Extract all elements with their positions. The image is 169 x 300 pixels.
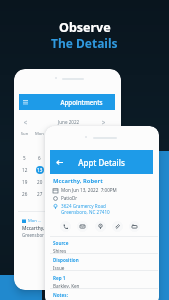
button[interactable]: 9 xyxy=(76,152,90,164)
staticText: 29 xyxy=(66,191,72,197)
staticText: Rep 1 xyxy=(53,275,66,281)
staticText: Mon xyxy=(32,131,47,137)
button[interactable]: 21 xyxy=(47,176,62,188)
button[interactable]: Directions xyxy=(95,221,106,232)
staticText: Thu xyxy=(76,131,90,137)
staticText: 3624 Gramercy Road xyxy=(61,203,106,209)
button[interactable]: 15 xyxy=(62,164,76,176)
staticText: 23 xyxy=(80,179,86,185)
button[interactable]: 7 xyxy=(47,152,62,164)
button[interactable]: Back xyxy=(50,150,153,174)
staticText: Greensboro, NC 27410 xyxy=(61,209,110,215)
staticText: The Details xyxy=(51,35,118,51)
button[interactable]: 29 xyxy=(62,188,76,200)
button[interactable]: 2 xyxy=(104,188,118,200)
button[interactable]: 20 xyxy=(32,176,47,188)
button[interactable]: 5 xyxy=(17,152,32,164)
staticText: Source xyxy=(53,240,69,246)
staticText: 10 xyxy=(94,155,100,161)
staticText: 13 xyxy=(37,167,43,173)
staticText: June 2022 xyxy=(58,119,80,125)
staticText: 19 xyxy=(22,179,28,185)
button[interactable]: 27 xyxy=(32,188,47,200)
button[interactable]: Previous month xyxy=(24,121,27,124)
button[interactable]: 11 xyxy=(104,152,118,164)
button[interactable]: 18 xyxy=(104,164,118,176)
staticText: Observe xyxy=(59,19,111,36)
button[interactable]: 13 xyxy=(32,164,47,176)
staticText: 16 xyxy=(80,167,86,173)
button[interactable]: 28 xyxy=(47,188,62,200)
staticText: Mon Jun 13, 2022 7:00PM xyxy=(61,187,117,193)
staticText: 2 xyxy=(110,191,113,197)
staticText: Disposition xyxy=(53,257,79,263)
button[interactable]: 17 xyxy=(90,164,104,176)
button[interactable]: 26 xyxy=(17,188,32,200)
button[interactable]: 23 xyxy=(76,176,90,188)
button[interactable]: Menu xyxy=(19,94,115,110)
staticText: Mccarthy, xyxy=(22,225,45,232)
staticText: 21 xyxy=(52,179,58,185)
button[interactable]: Call xyxy=(60,221,71,232)
staticText: Mon ... xyxy=(28,218,42,224)
staticText: 27 xyxy=(37,191,43,197)
staticText: 11 xyxy=(108,155,114,161)
staticText: Appt Details xyxy=(63,157,140,168)
button[interactable]: 24 xyxy=(90,176,104,188)
button[interactable]: 8 xyxy=(62,152,76,164)
staticText: 6 xyxy=(38,155,41,161)
staticText: 30 xyxy=(80,191,86,197)
button[interactable]: Next month xyxy=(102,121,105,124)
staticText: Notes: xyxy=(53,292,68,298)
button[interactable]: Attachments xyxy=(112,221,123,232)
button[interactable]: 30 xyxy=(76,188,90,200)
other: Menu xyxy=(23,100,28,104)
button[interactable]: Files xyxy=(129,221,140,232)
staticText: 22 xyxy=(66,179,72,185)
button[interactable]: 12 xyxy=(17,164,32,176)
button[interactable]: 14 xyxy=(47,164,62,176)
staticText: 1 xyxy=(96,191,99,197)
button[interactable]: 10 xyxy=(90,152,104,164)
button[interactable]: Email xyxy=(77,221,88,232)
staticText: Greensbor xyxy=(22,232,44,238)
staticText: 5 xyxy=(23,155,26,161)
button[interactable]: Mon ... xyxy=(22,218,82,238)
other: Back xyxy=(56,159,63,166)
staticText: PatioDr xyxy=(61,195,78,201)
staticText: 26 xyxy=(22,191,28,197)
staticText: 20 xyxy=(37,179,43,185)
staticText: Sun xyxy=(17,131,32,137)
button[interactable]: 22 xyxy=(62,176,76,188)
staticText: 24 xyxy=(94,179,100,185)
staticText: Barkley, Ken xyxy=(53,283,80,289)
button[interactable]: 16 xyxy=(76,164,90,176)
staticText: 12 xyxy=(22,167,28,173)
staticText: Appointments xyxy=(60,98,103,106)
button[interactable]: 1 xyxy=(90,188,104,200)
staticText: Mccarthy, Robert xyxy=(53,177,103,185)
staticText: Issue xyxy=(53,265,65,271)
staticText: 28 xyxy=(52,191,58,197)
button[interactable]: 19 xyxy=(17,176,32,188)
staticText: Shires xyxy=(53,248,67,254)
button[interactable]: 6 xyxy=(32,152,47,164)
